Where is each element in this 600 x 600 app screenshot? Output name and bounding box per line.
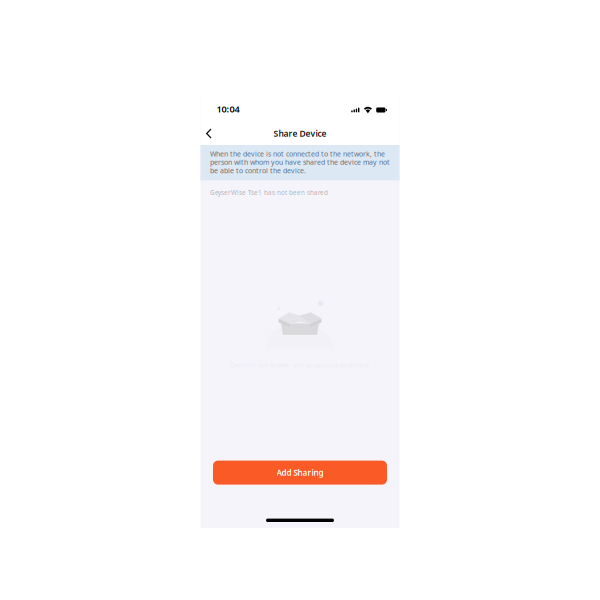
staticText: Add Sharing [276,467,323,478]
button[interactable]: Back [201,123,217,144]
staticText: When the device is not connected to the … [210,149,390,175]
button[interactable]: Add Sharing [213,461,387,485]
staticText: 10:04 [216,103,239,115]
staticText: Share Device [273,128,326,139]
staticText: GeyserWise Tse1 has not been shared [210,188,328,197]
